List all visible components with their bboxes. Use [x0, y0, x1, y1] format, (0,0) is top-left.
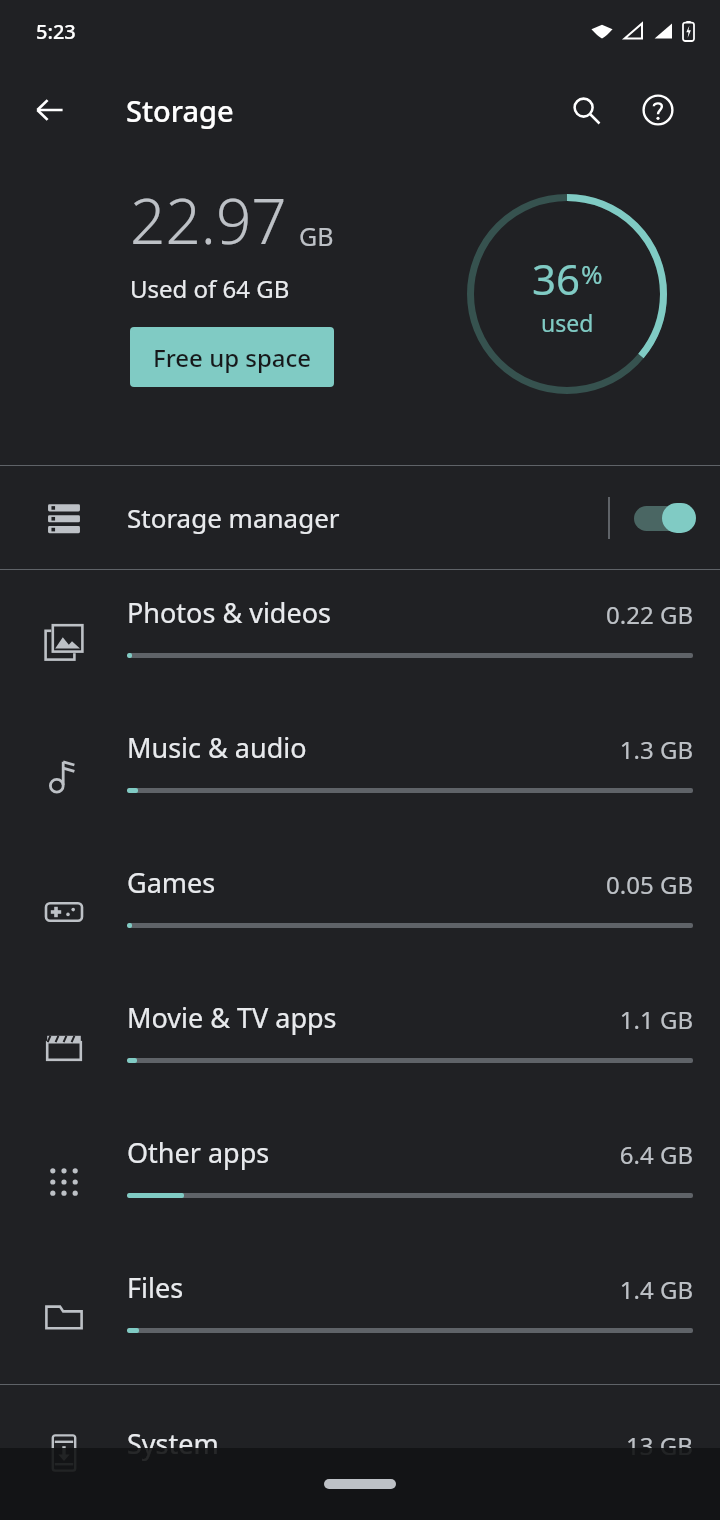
staticText: 0.22 GB	[606, 598, 693, 631]
button[interactable]: System	[0, 1385, 720, 1520]
staticText: Photos & videos	[127, 594, 331, 631]
button[interactable]: Search	[550, 74, 622, 146]
staticText: Files	[127, 1269, 184, 1306]
button[interactable]: Back	[14, 74, 86, 146]
staticText: Movie & TV apps	[127, 999, 337, 1036]
staticText: 36	[532, 250, 581, 307]
staticText: Storage manager	[127, 500, 608, 535]
button[interactable]: Games	[0, 844, 720, 979]
staticText: System	[127, 1425, 219, 1462]
button[interactable]: Other apps	[0, 1114, 720, 1249]
button[interactable]: Files	[0, 1249, 720, 1384]
staticText: Other apps	[127, 1134, 270, 1171]
staticText: 1.1 GB	[619, 1003, 693, 1036]
staticText: %	[581, 256, 603, 291]
staticText: GB	[299, 219, 334, 253]
staticText: 5:23	[36, 18, 76, 45]
staticText: Music & audio	[127, 729, 307, 766]
staticText: Used of 64 GB	[130, 272, 290, 305]
staticText: 0.05 GB	[606, 868, 693, 901]
button[interactable]: Photos & videos	[0, 574, 720, 709]
staticText: Free up space	[153, 341, 312, 374]
staticText: 13 GB	[626, 1429, 693, 1462]
button[interactable]: Movie & TV apps	[0, 979, 720, 1114]
button[interactable]: Music & audio	[0, 709, 720, 844]
staticText: 22.97	[130, 178, 287, 262]
button[interactable]: Storage manager	[0, 466, 720, 569]
staticText: 1.3 GB	[619, 733, 693, 766]
button[interactable]: Free up space	[130, 327, 334, 387]
staticText: Games	[127, 864, 216, 901]
staticText: Storage	[126, 91, 234, 130]
button[interactable]: Storage manager toggle	[610, 466, 720, 569]
staticText: 6.4 GB	[619, 1138, 693, 1171]
staticText: used	[541, 307, 594, 338]
staticText: 1.4 GB	[619, 1273, 693, 1306]
button[interactable]: Help	[622, 74, 694, 146]
